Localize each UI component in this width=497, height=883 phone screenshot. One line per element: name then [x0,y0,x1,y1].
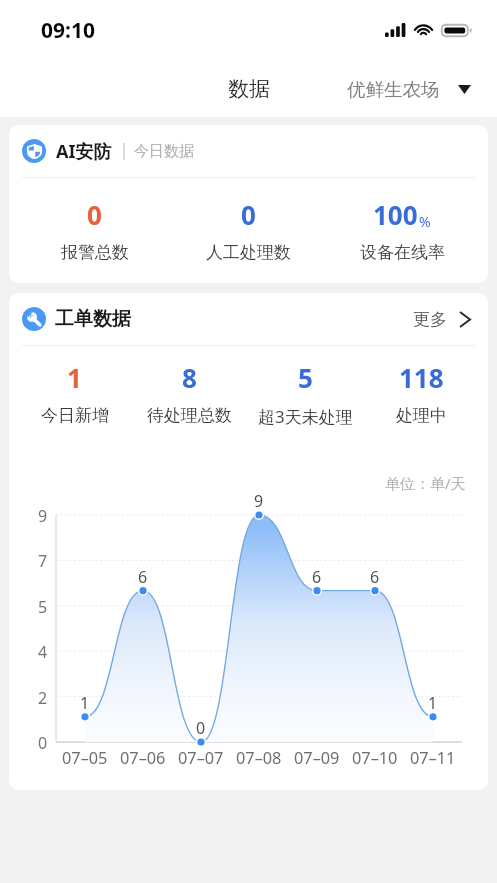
staticText: % [419,212,431,231]
staticText: 1 [80,692,90,714]
staticText: 数据 [228,76,270,102]
staticText: 人工处理数 [206,242,291,263]
staticText: 今日新增 [41,405,109,426]
staticText: 待处理总数 [147,405,232,426]
staticText: 07–11 [410,747,456,769]
staticText: 报警总数 [61,242,129,263]
staticText: 更多 [413,309,447,330]
staticText: 07–06 [120,747,166,769]
staticText: 0 [38,732,48,754]
staticText: 07–08 [236,747,282,769]
staticText: 8 [182,360,197,395]
staticText: 6 [138,566,148,588]
staticText: 0 [241,197,256,232]
staticText: 今日数据 [134,142,194,161]
staticText: AI安防 [56,139,112,164]
staticText: 工单数据 [55,307,131,331]
staticText: 超3天未处理 [258,405,353,428]
staticText: 0 [196,717,206,739]
staticText: 07–09 [294,747,340,769]
staticText: 优鲜生农场 [347,78,440,101]
staticText: 9 [254,490,264,512]
staticText: 设备在线率 [360,242,445,263]
staticText: 4 [38,641,48,663]
staticText: 6 [312,566,322,588]
button[interactable]: 更多 [413,309,471,330]
staticText: 09:10 [41,16,95,45]
staticText: 5 [298,360,313,395]
staticText: 118 [399,360,444,395]
staticText: 100 [373,197,418,232]
staticText: 07–10 [352,747,398,769]
staticText: 0 [87,197,102,232]
staticText: 2 [38,687,48,709]
staticText: 1 [428,692,438,714]
staticText: 07–07 [178,747,224,769]
staticText: 处理中 [396,405,447,426]
staticText: 6 [370,566,380,588]
staticText: 单位：单/天 [385,473,466,493]
staticText: 7 [38,550,48,572]
staticText: 1 [67,360,82,395]
button[interactable]: 优鲜生农场 [347,78,471,101]
staticText: 9 [38,505,48,527]
staticText: 5 [38,596,48,618]
staticText: 07–05 [62,747,108,769]
